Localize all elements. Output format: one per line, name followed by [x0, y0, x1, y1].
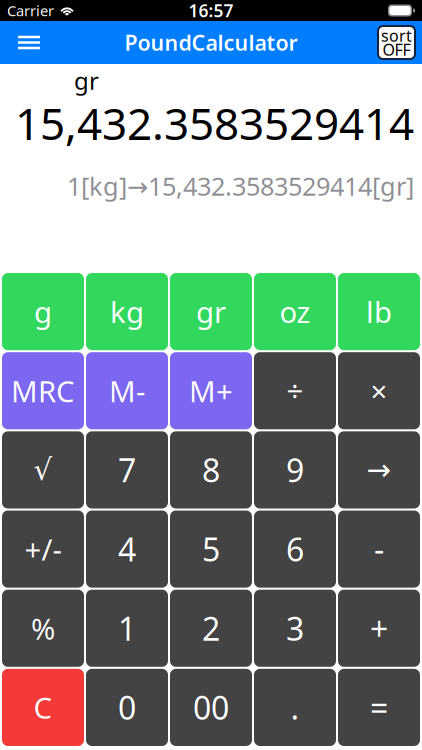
staticText: lb — [366, 292, 392, 331]
staticText: . — [290, 686, 299, 729]
button[interactable]: 00 — [170, 669, 252, 746]
staticText: 16:57 — [188, 0, 233, 22]
staticText: 3 — [286, 607, 304, 649]
staticText: 6 — [286, 528, 304, 570]
staticText: = — [370, 686, 388, 729]
staticText: oz — [279, 292, 310, 331]
button[interactable]: % — [2, 590, 84, 667]
button[interactable]: +/- — [2, 510, 84, 588]
button[interactable]: Sort off — [378, 26, 415, 59]
staticText: 0 — [118, 686, 136, 729]
staticText: 5 — [202, 528, 220, 570]
button[interactable]: 8 — [170, 431, 252, 508]
button[interactable]: 9 — [254, 431, 336, 508]
staticText: 15,432.3583529414 — [15, 94, 414, 152]
button[interactable]: 2 — [170, 590, 252, 667]
staticText: sort — [381, 25, 412, 46]
staticText: % — [31, 609, 55, 648]
button[interactable]: . — [254, 669, 336, 746]
staticText: 8 — [202, 449, 220, 491]
staticText: OFF — [382, 39, 410, 60]
staticText: ÷ — [286, 371, 303, 410]
button[interactable]: g — [2, 273, 84, 350]
staticText: → — [366, 453, 391, 487]
staticText: 00 — [193, 686, 229, 729]
button[interactable]: - — [338, 510, 420, 588]
button[interactable]: oz — [254, 273, 336, 350]
staticText: g — [34, 292, 52, 331]
staticText: 4 — [118, 528, 136, 570]
button[interactable]: 1 — [86, 590, 168, 667]
button[interactable]: C — [2, 669, 84, 746]
staticText: kg — [110, 292, 144, 331]
button[interactable]: MRC — [2, 352, 84, 429]
staticText: 7 — [118, 449, 136, 491]
staticText: √ — [33, 453, 52, 487]
staticText: 1 — [118, 607, 136, 649]
staticText: 1[kg]→15,432.3583529414[gr] — [67, 169, 414, 203]
staticText: PoundCalculator — [124, 28, 297, 57]
button[interactable]: M- — [86, 352, 168, 429]
staticText: MRC — [11, 371, 75, 410]
button[interactable]: 0 — [86, 669, 168, 746]
button[interactable]: 3 — [254, 590, 336, 667]
button[interactable]: 7 — [86, 431, 168, 508]
button[interactable]: 5 — [170, 510, 252, 588]
staticText: 9 — [286, 449, 304, 491]
staticText: C — [33, 688, 52, 727]
staticText: × — [370, 371, 387, 410]
button[interactable]: gr — [170, 273, 252, 350]
staticText: gr — [196, 292, 226, 331]
staticText: +/- — [24, 530, 61, 569]
button[interactable]: kg — [86, 273, 168, 350]
staticText: 2 — [202, 607, 220, 649]
button[interactable]: lb — [338, 273, 420, 350]
button[interactable]: → — [338, 431, 420, 508]
staticText: M+ — [189, 371, 233, 410]
button[interactable]: M+ — [170, 352, 252, 429]
staticText: M- — [109, 371, 145, 410]
button[interactable]: 4 — [86, 510, 168, 588]
button[interactable]: × — [338, 352, 420, 429]
staticText: + — [370, 607, 388, 649]
button[interactable]: Menu — [7, 21, 51, 64]
button[interactable]: = — [338, 669, 420, 746]
button[interactable]: ÷ — [254, 352, 336, 429]
button[interactable]: √ — [2, 431, 84, 508]
button[interactable]: 6 — [254, 510, 336, 588]
staticText: Carrier — [7, 1, 54, 20]
staticText: gr — [74, 65, 99, 96]
staticText: - — [374, 528, 384, 570]
button[interactable]: + — [338, 590, 420, 667]
